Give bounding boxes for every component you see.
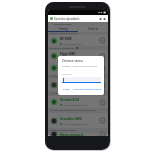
staticText: 1 dzień do zmiany xyxy=(53,23,72,26)
staticText: Grundfos 5400 xyxy=(60,117,82,121)
button[interactable]: Kontrola objazdówki xyxy=(48,15,108,22)
button[interactable]: Cofnij xyxy=(63,88,70,91)
staticText: WPROWADZONE OSTATNIO xyxy=(50,32,79,35)
staticText: Zmiana stanu xyxy=(62,59,83,63)
staticText: Pompy xyxy=(59,27,68,31)
staticText: Grindex 8/22 xyxy=(60,98,79,102)
staticText: Stan: 2 tygodnie temu xyxy=(63,103,88,106)
button[interactable]: Pompy xyxy=(48,26,78,32)
staticText: Czeka na zmianę środki 3 xyxy=(50,129,76,132)
staticText: Cofnij xyxy=(63,88,70,91)
button[interactable]: BP 5500 xyxy=(48,35,108,46)
staticText: Stan: 6 dni temu xyxy=(63,57,82,60)
staticText: Pompy do uzupełnienia xyxy=(50,47,75,50)
staticText: Flygt 3085 xyxy=(60,52,76,56)
button[interactable]: Historia xyxy=(78,26,108,32)
staticText: Kontrola objazdówki xyxy=(54,17,99,21)
button[interactable]: Grindex 8/22 xyxy=(48,96,108,108)
staticText: Metso pompa 4 xyxy=(60,133,83,136)
staticText: Stan: 3 tygodnie temu xyxy=(63,122,88,125)
button[interactable]: Metso pompa 4 xyxy=(48,133,108,136)
staticText: Oczekujące xyxy=(50,75,62,78)
button[interactable]: Grundfos 5400 xyxy=(48,113,108,128)
staticText: Nowy stan xyxy=(62,73,72,76)
staticText: Czekają o sprawdzenie zasilania, wymień … xyxy=(50,109,96,112)
button[interactable]: Uruchom zlecenie i napraw xyxy=(73,88,101,91)
staticText: Sprawdź, w jakim stanie jest pompa xyxy=(62,65,98,68)
staticText: BP 5500 xyxy=(60,37,72,41)
staticText: KTZ 35.5 xyxy=(60,64,73,68)
staticText: Flygt 2400 xyxy=(60,81,76,85)
button[interactable]: Zmiana stanu xyxy=(58,56,104,95)
button[interactable]: Flygt 2400 xyxy=(48,79,108,91)
button[interactable]: KTZ 35.5 xyxy=(48,62,108,74)
button[interactable]: Flygt 3085 xyxy=(48,50,108,62)
staticText: Historia xyxy=(88,27,98,31)
staticText: Uruchom zlecenie i napraw xyxy=(73,88,101,91)
staticText: Do przeglądu xyxy=(50,92,64,95)
staticText: Stan: 4 dni temu xyxy=(63,42,82,45)
